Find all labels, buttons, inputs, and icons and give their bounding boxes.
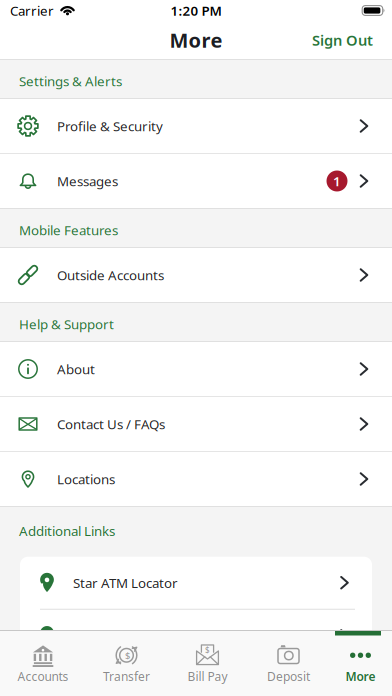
staticText: 1:20 PM [170,2,221,19]
staticText: Contact Us / FAQs [57,415,165,433]
staticText: Accounts [17,668,68,684]
button[interactable]: Profile & Security [0,99,392,153]
button[interactable]: Star ATM Locator [20,557,372,609]
button[interactable]: Contact Us / FAQs [0,397,392,451]
staticText: $ [125,649,130,661]
staticText: Additional Links [19,522,115,540]
button[interactable]: Deposit [248,643,329,684]
button[interactable]: Accounts [0,643,86,684]
button[interactable]: Messages [0,154,392,208]
button[interactable]: Sign Out [312,30,373,50]
staticText: Locations [57,470,115,488]
staticText: Sign Out [312,30,373,50]
staticText: Help & Support [19,315,114,333]
staticText: More [169,27,222,53]
staticText: More [345,668,375,684]
staticText: Messages [57,172,118,190]
button[interactable]: $ [86,643,167,684]
staticText: Deposit [267,668,310,684]
staticText: Mobile Features [19,221,118,239]
button[interactable]: Privacy Policy [20,610,372,662]
staticText: 1 [333,172,341,190]
staticText: Star ATM Locator [73,574,178,592]
button[interactable]: Outside Accounts [0,248,392,302]
button[interactable]: About [0,342,392,396]
staticText: Bill Pay [187,668,227,684]
staticText: Profile & Security [57,117,163,135]
staticText: Settings & Alerts [19,72,122,90]
staticText: $ [205,645,210,655]
button[interactable]: Locations [0,452,392,506]
staticText: Privacy Policy [73,627,155,645]
staticText: Outside Accounts [57,266,164,284]
staticText: Carrier [10,2,54,19]
button[interactable]: $ [167,643,248,684]
button[interactable]: More [329,643,392,684]
staticText: Transfer [103,668,150,684]
staticText: About [57,360,95,378]
